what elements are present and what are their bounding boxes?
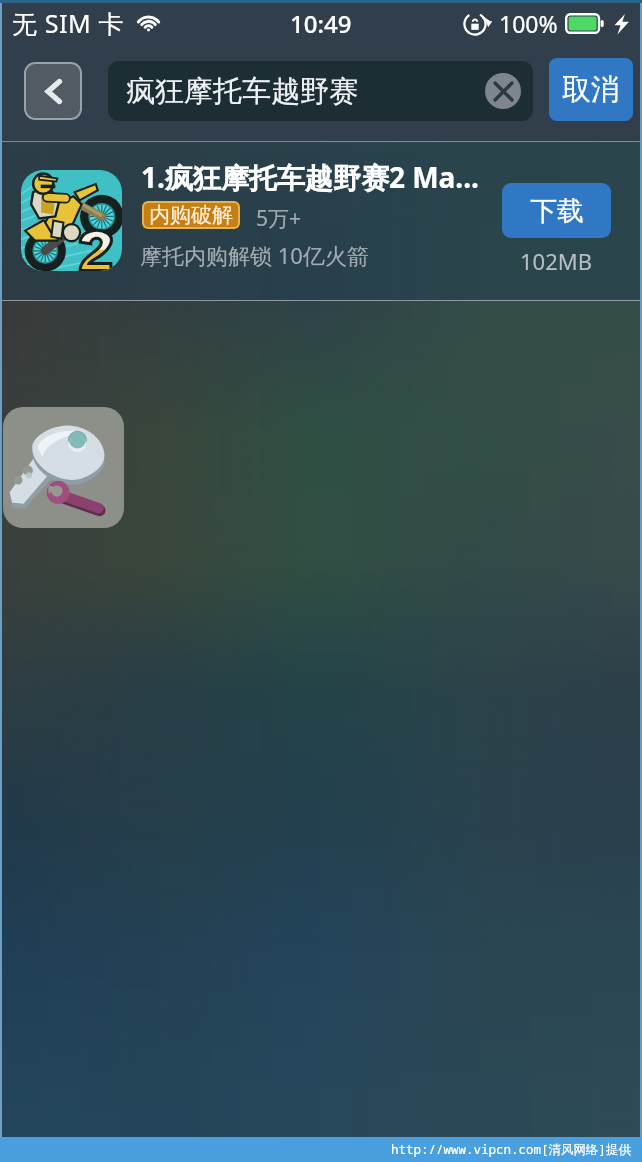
button[interactable]: Back <box>24 62 82 120</box>
button[interactable]: 1.疯狂摩托车越野赛2 Ma... <box>0 141 642 301</box>
button[interactable]: Tools <box>3 407 124 528</box>
staticText: 100% <box>499 8 558 39</box>
staticText: http://www.vipcn.com[清风网络]提供 <box>391 1141 632 1158</box>
staticText: 下载 <box>530 194 584 228</box>
staticText: 摩托内购解锁 10亿火箭 <box>140 240 369 270</box>
staticText: 10:49 <box>290 7 352 40</box>
staticText: 疯狂摩托车越野赛 <box>126 73 358 110</box>
staticText: 5万+ <box>256 204 302 233</box>
button[interactable]: Clear <box>485 73 521 109</box>
staticText: 1.疯狂摩托车越野赛2 Ma... <box>141 158 489 196</box>
staticText: 无 SIM 卡 <box>12 6 125 40</box>
staticText: 102MB <box>520 246 593 276</box>
staticText: 取消 <box>562 71 620 108</box>
staticText: 内购破解 <box>149 202 233 228</box>
button[interactable]: 疯狂摩托车越野赛 <box>108 61 533 121</box>
button[interactable]: 下载 <box>502 183 611 238</box>
button[interactable]: 取消 <box>549 58 633 121</box>
